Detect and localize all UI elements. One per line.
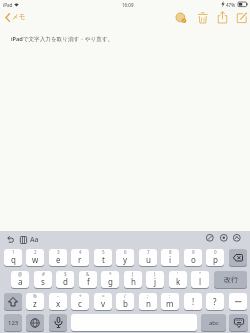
button[interactable]: Aa xyxy=(30,235,42,246)
button[interactable] xyxy=(26,314,44,331)
button[interactable]: 123 xyxy=(4,314,22,331)
button[interactable] xyxy=(229,314,248,331)
button[interactable]: 8 xyxy=(161,249,179,266)
button[interactable] xyxy=(49,314,67,331)
staticText: k xyxy=(176,276,181,287)
button[interactable]: ' xyxy=(169,271,187,288)
staticText: ー xyxy=(234,297,242,307)
staticText: 123 xyxy=(8,319,19,327)
staticText: 改行 xyxy=(224,275,238,284)
staticText: 8 xyxy=(169,249,172,255)
button[interactable]: ー xyxy=(229,293,247,310)
staticText: 0 xyxy=(214,249,217,255)
button[interactable]: 6 xyxy=(116,249,134,266)
button[interactable]: : xyxy=(161,293,179,310)
staticText: / xyxy=(124,293,126,299)
staticText: z xyxy=(33,298,37,309)
staticText: w xyxy=(32,254,39,265)
button[interactable]: 3 xyxy=(49,249,67,266)
staticText: : xyxy=(169,293,171,299)
staticText: iPad xyxy=(3,2,13,8)
staticText: 6 xyxy=(124,249,127,255)
button[interactable]: ( xyxy=(124,271,142,288)
staticText: s xyxy=(41,276,45,287)
staticText: & xyxy=(86,271,90,277)
button[interactable]: $ xyxy=(56,271,74,288)
staticText: h xyxy=(131,276,136,287)
staticText: " xyxy=(199,271,201,277)
button[interactable]: 、 xyxy=(184,293,202,310)
staticText: 3 xyxy=(57,249,60,255)
staticText: d xyxy=(63,276,68,287)
staticText: t xyxy=(102,254,105,265)
button[interactable]: 0 xyxy=(206,249,224,266)
button[interactable]: @ xyxy=(11,271,29,288)
button[interactable]: 2 xyxy=(26,249,44,266)
button[interactable] xyxy=(229,249,247,266)
button[interactable]: / xyxy=(116,293,134,310)
staticText: ( xyxy=(132,271,134,277)
button[interactable] xyxy=(236,12,248,24)
button[interactable] xyxy=(6,236,14,244)
button[interactable]: + xyxy=(71,293,89,310)
staticText: ' xyxy=(177,271,179,277)
button[interactable]: 4 xyxy=(71,249,89,266)
staticText: * xyxy=(109,271,112,277)
button[interactable]: 改行 xyxy=(214,271,247,288)
staticText: メモ xyxy=(12,13,26,21)
button[interactable]: " xyxy=(191,271,209,288)
button[interactable]: - xyxy=(49,293,67,310)
staticText: # xyxy=(42,271,45,277)
button[interactable] xyxy=(206,234,214,242)
staticText: l xyxy=(199,276,202,287)
button[interactable] xyxy=(20,236,27,244)
button[interactable] xyxy=(197,12,209,24)
staticText: y xyxy=(123,254,128,265)
staticText: 、 xyxy=(191,305,196,310)
button[interactable]: & xyxy=(79,271,97,288)
button[interactable]: 1 xyxy=(4,249,22,266)
staticText: o xyxy=(191,254,196,265)
button[interactable]: * xyxy=(101,271,119,288)
staticText: 5 xyxy=(102,249,105,255)
staticText: c xyxy=(78,298,82,309)
staticText: u xyxy=(146,254,151,265)
staticText: f xyxy=(87,276,90,287)
staticText: g xyxy=(108,276,113,287)
staticText: ) xyxy=(154,271,156,277)
staticText: j xyxy=(154,276,157,287)
button[interactable]: ; xyxy=(139,293,157,310)
staticText: 47% xyxy=(226,2,235,8)
button[interactable]: = xyxy=(94,293,112,310)
button[interactable]: % xyxy=(26,293,44,310)
staticText: + xyxy=(79,293,82,299)
button[interactable] xyxy=(233,234,241,242)
button[interactable]: # xyxy=(34,271,52,288)
button[interactable] xyxy=(71,314,197,331)
staticText: % xyxy=(33,293,37,299)
staticText: ! xyxy=(192,296,195,307)
button[interactable] xyxy=(175,12,188,24)
staticText: ? xyxy=(213,296,217,307)
staticText: 16:09 xyxy=(122,2,134,8)
button[interactable] xyxy=(4,293,22,310)
button[interactable]: 9 xyxy=(184,249,202,266)
staticText: i xyxy=(169,254,172,265)
button[interactable]: ) xyxy=(146,271,164,288)
button[interactable]: 。 xyxy=(206,293,224,310)
staticText: b xyxy=(123,298,128,309)
button[interactable]: abc xyxy=(201,314,226,331)
staticText: iPadで文字入力を取り消す・やり直す。 xyxy=(11,35,114,43)
staticText: n xyxy=(146,298,151,309)
button[interactable]: 5 xyxy=(94,249,112,266)
button[interactable]: 7 xyxy=(139,249,157,266)
staticText: 7 xyxy=(147,249,150,255)
button[interactable] xyxy=(217,11,229,24)
staticText: ; xyxy=(147,293,149,299)
staticText: v xyxy=(101,298,106,309)
staticText: = xyxy=(102,293,105,299)
staticText: x xyxy=(56,298,61,309)
button[interactable] xyxy=(220,234,228,242)
button[interactable]: メモ xyxy=(3,11,35,25)
staticText: m xyxy=(166,298,174,309)
